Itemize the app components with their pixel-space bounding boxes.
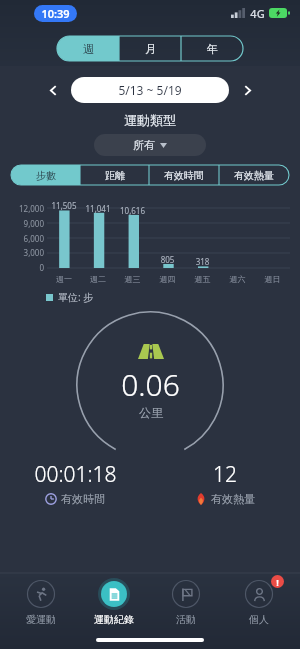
button[interactable]: 愛運動 bbox=[9, 578, 73, 626]
staticText: 活動 bbox=[176, 613, 196, 626]
staticText: 5/13 ~ 5/19 bbox=[118, 82, 182, 98]
button[interactable]: Next week bbox=[234, 77, 260, 103]
button[interactable]: 活動 bbox=[154, 578, 218, 626]
staticText: 12 bbox=[213, 460, 237, 489]
staticText: 所有 bbox=[133, 138, 155, 152]
staticText: 有效熱量 bbox=[211, 492, 255, 506]
staticText: 距離 bbox=[105, 169, 125, 182]
staticText: 年 bbox=[207, 42, 218, 56]
staticText: 運動類型 bbox=[0, 112, 300, 128]
button[interactable]: 運動紀錄 bbox=[82, 578, 146, 626]
staticText: 11,505 bbox=[47, 200, 81, 211]
staticText: 週二 bbox=[81, 274, 115, 284]
staticText: 週六 bbox=[220, 274, 255, 284]
button[interactable]: 有效時間 bbox=[149, 165, 219, 185]
staticText: 9,000 bbox=[23, 218, 44, 229]
staticText: 有效熱量 bbox=[234, 169, 274, 182]
button[interactable]: 所有 bbox=[94, 134, 206, 156]
button[interactable]: 步數 bbox=[11, 165, 80, 185]
staticText: 00:01:18 bbox=[34, 460, 117, 489]
staticText: 805 bbox=[150, 254, 185, 265]
button[interactable]: 12 bbox=[150, 460, 300, 506]
button[interactable]: 00:01:18 bbox=[0, 460, 150, 506]
staticText: 單位: 步 bbox=[58, 290, 94, 304]
staticText: 週五 bbox=[185, 274, 220, 284]
staticText: 週四 bbox=[150, 274, 185, 284]
staticText: 有效時間 bbox=[164, 169, 204, 182]
staticText: 10,616 bbox=[115, 205, 150, 216]
staticText: 公里 bbox=[139, 405, 163, 420]
staticText: 週 bbox=[83, 42, 94, 56]
staticText: 6,000 bbox=[23, 233, 44, 244]
staticText: 318 bbox=[185, 256, 220, 267]
staticText: 步數 bbox=[36, 169, 56, 182]
button[interactable]: 個人 bbox=[227, 578, 291, 626]
button[interactable]: 月 bbox=[119, 36, 181, 61]
staticText: 11,041 bbox=[81, 203, 115, 214]
staticText: 愛運動 bbox=[26, 613, 56, 626]
staticText: 有效時間 bbox=[61, 492, 105, 506]
staticText: 週三 bbox=[115, 274, 150, 284]
staticText: 12,000 bbox=[18, 203, 44, 214]
button[interactable]: Previous week bbox=[40, 77, 66, 103]
staticText: 0.06 bbox=[121, 364, 180, 405]
staticText: 週一 bbox=[47, 274, 81, 284]
staticText: 4G bbox=[250, 6, 265, 21]
button[interactable]: 距離 bbox=[80, 165, 149, 185]
staticText: ! bbox=[276, 576, 279, 588]
button[interactable]: 週 bbox=[57, 36, 119, 61]
staticText: 個人 bbox=[249, 613, 269, 626]
button[interactable]: 有效熱量 bbox=[219, 165, 289, 185]
staticText: 0 bbox=[39, 262, 44, 273]
staticText: 運動紀錄 bbox=[94, 613, 134, 626]
staticText: 月 bbox=[145, 42, 156, 56]
staticText: 週日 bbox=[255, 274, 290, 284]
button[interactable]: 5/13 ~ 5/19 bbox=[71, 77, 229, 103]
staticText: 3,000 bbox=[23, 247, 44, 258]
button[interactable]: 年 bbox=[181, 36, 243, 61]
staticText: 10:39 bbox=[41, 6, 70, 21]
